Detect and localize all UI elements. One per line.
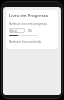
button[interactable]: Atual — [9, 28, 25, 33]
staticText: Nenhum livro em progresso — [9, 22, 48, 26]
staticText: Nenhum livro concluído — [9, 40, 42, 44]
staticText: Atual — [10, 29, 17, 33]
staticText: Livro em Progresso — [9, 13, 49, 19]
button[interactable]: Livro em Progresso — [6, 10, 58, 49]
staticText: 0% — [28, 29, 32, 33]
